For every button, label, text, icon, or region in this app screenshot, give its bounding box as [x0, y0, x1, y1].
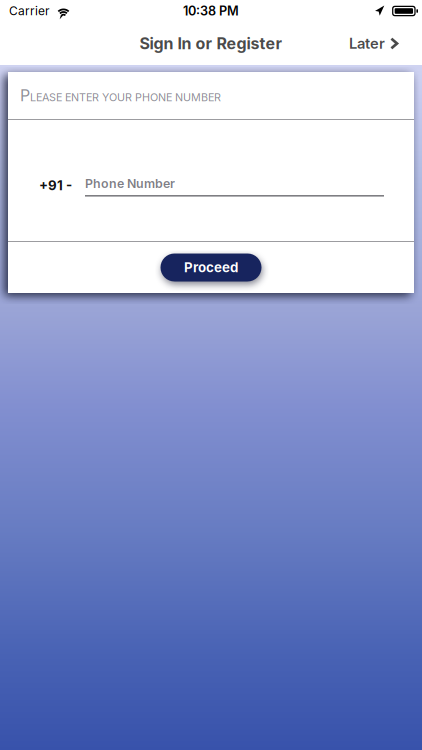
staticText: Carrier [9, 4, 50, 18]
button[interactable]: Later [335, 22, 422, 65]
staticText: +91 - [39, 177, 72, 193]
staticText: Later [349, 35, 385, 52]
staticText: PLEASE ENTER YOUR PHONE NUMBER [20, 86, 221, 105]
staticText: Proceed [184, 259, 238, 275]
staticText: 10:38 PM [183, 3, 239, 19]
staticText: Sign In or Register [139, 34, 282, 53]
staticText: Phone Number [85, 176, 175, 191]
button[interactable]: Proceed [160, 253, 261, 281]
